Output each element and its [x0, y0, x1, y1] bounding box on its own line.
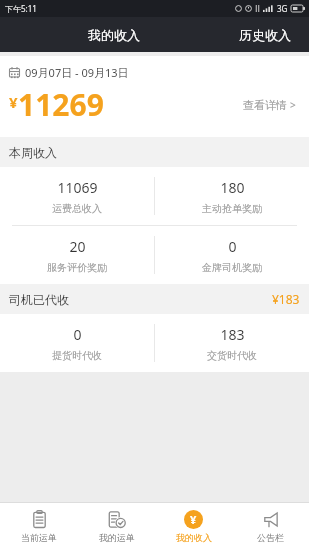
button[interactable]: 查看详情: [239, 92, 300, 118]
staticText: 交货时代收: [207, 349, 257, 362]
button[interactable]: 183: [155, 314, 309, 372]
staticText: 查看详情: [243, 98, 287, 112]
button[interactable]: 我的运单: [78, 503, 155, 550]
staticText: 公告栏: [257, 532, 284, 543]
staticText: 历史收入: [239, 27, 291, 43]
staticText: 主动抢单奖励: [202, 202, 262, 215]
staticText: 我的收入: [176, 532, 212, 543]
staticText: 180: [220, 178, 245, 197]
staticText: >: [290, 98, 296, 112]
staticText: 司机已代收: [9, 292, 69, 307]
button[interactable]: 当前运单: [0, 503, 78, 550]
staticText: 09月07日 - 09月13日: [25, 65, 129, 80]
button[interactable]: 0: [0, 314, 154, 372]
staticText: 11269: [18, 84, 104, 125]
button[interactable]: 公告栏: [232, 503, 309, 550]
button[interactable]: 历史收入: [229, 21, 301, 49]
button[interactable]: 0: [155, 226, 309, 284]
staticText: ¥: [9, 92, 18, 112]
staticText: 下午5:11: [5, 3, 37, 14]
staticText: 运费总收入: [52, 202, 102, 215]
staticText: 金牌司机奖励: [202, 261, 262, 274]
staticText: 11069: [57, 178, 98, 197]
button[interactable]: 20: [0, 226, 154, 284]
staticText: ¥183: [272, 291, 300, 307]
button[interactable]: 180: [155, 167, 309, 225]
staticText: ¥: [190, 512, 197, 527]
staticText: 当前运单: [21, 532, 57, 543]
button[interactable]: 我的收入: [155, 503, 232, 550]
staticText: 20: [69, 237, 86, 256]
button[interactable]: 11069: [0, 167, 154, 225]
button[interactable]: 我的收入: [70, 21, 158, 49]
staticText: 本周收入: [9, 145, 57, 160]
staticText: 我的运单: [99, 532, 135, 543]
staticText: 我的收入: [88, 27, 140, 43]
staticText: 183: [220, 325, 245, 344]
staticText: 提货时代收: [52, 349, 102, 362]
staticText: 3G: [277, 3, 288, 14]
staticText: 0: [73, 325, 82, 344]
staticText: 0: [228, 237, 237, 256]
staticText: 服务评价奖励: [47, 261, 107, 274]
